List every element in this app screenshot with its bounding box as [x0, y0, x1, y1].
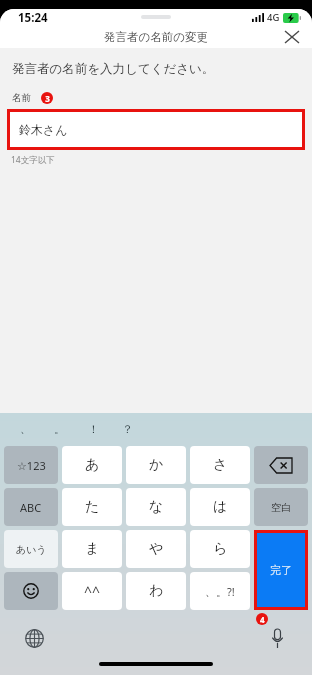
staticText: か — [149, 456, 164, 474]
button[interactable]: 空白 — [254, 488, 308, 526]
button[interactable]: あいう — [4, 530, 58, 568]
staticText: あいう — [16, 543, 47, 556]
staticText: 空白 — [271, 501, 291, 514]
button[interactable]: 鈴木さん — [7, 109, 305, 150]
button[interactable]: 音声入力 — [264, 625, 290, 651]
staticText: 名前 — [12, 92, 31, 104]
button[interactable]: は — [190, 488, 250, 526]
staticText: 、 — [20, 422, 31, 436]
button[interactable]: た — [62, 488, 122, 526]
staticText: あ — [85, 456, 100, 474]
button[interactable]: ま — [62, 530, 122, 568]
button[interactable]: 完了 — [257, 533, 305, 607]
staticText: ら — [213, 540, 228, 558]
button[interactable]: 。 — [42, 416, 76, 442]
staticText: 完了 — [270, 563, 292, 577]
staticText: 発言者の名前の変更 — [104, 30, 209, 44]
staticText: 。 — [54, 422, 65, 436]
staticText: さ — [213, 456, 228, 474]
button[interactable]: 削除 — [254, 446, 308, 484]
button[interactable]: や — [126, 530, 186, 568]
staticText: 4 — [260, 614, 265, 625]
button[interactable]: な — [126, 488, 186, 526]
staticText: た — [85, 498, 100, 516]
button[interactable]: ^^ — [62, 572, 122, 610]
staticText: 14文字以下 — [11, 154, 55, 166]
staticText: ^^ — [84, 582, 101, 601]
button[interactable]: ！ — [76, 416, 110, 442]
button[interactable]: か — [126, 446, 186, 484]
button[interactable]: ？ — [110, 416, 144, 442]
button[interactable]: 、。?! — [190, 572, 250, 610]
staticText: 、。?! — [205, 584, 235, 599]
button[interactable]: あ — [62, 446, 122, 484]
button[interactable]: わ — [126, 572, 186, 610]
staticText: 鈴木さん — [19, 122, 68, 137]
staticText: 15:24 — [18, 10, 48, 26]
staticText: は — [213, 498, 228, 516]
staticText: 4G — [267, 11, 280, 24]
button[interactable]: 閉じる — [280, 26, 304, 48]
staticText: 発言者の名前を入力してください。 — [12, 61, 215, 77]
button[interactable]: 言語切替 — [21, 625, 47, 651]
staticText: ABC — [20, 500, 42, 515]
staticText: ？ — [122, 422, 133, 436]
staticText: や — [149, 540, 164, 558]
button[interactable]: 、 — [8, 416, 42, 442]
staticText: ☆123 — [17, 458, 46, 473]
staticText: 3 — [45, 93, 50, 104]
staticText: わ — [149, 582, 164, 600]
button[interactable]: ら — [190, 530, 250, 568]
staticText: ！ — [88, 422, 99, 436]
staticText: ま — [85, 540, 100, 558]
button[interactable]: ABC — [4, 488, 58, 526]
button[interactable]: ☆123 — [4, 446, 58, 484]
button[interactable]: 絵文字 — [4, 572, 58, 610]
button[interactable]: さ — [190, 446, 250, 484]
staticText: な — [149, 498, 164, 516]
